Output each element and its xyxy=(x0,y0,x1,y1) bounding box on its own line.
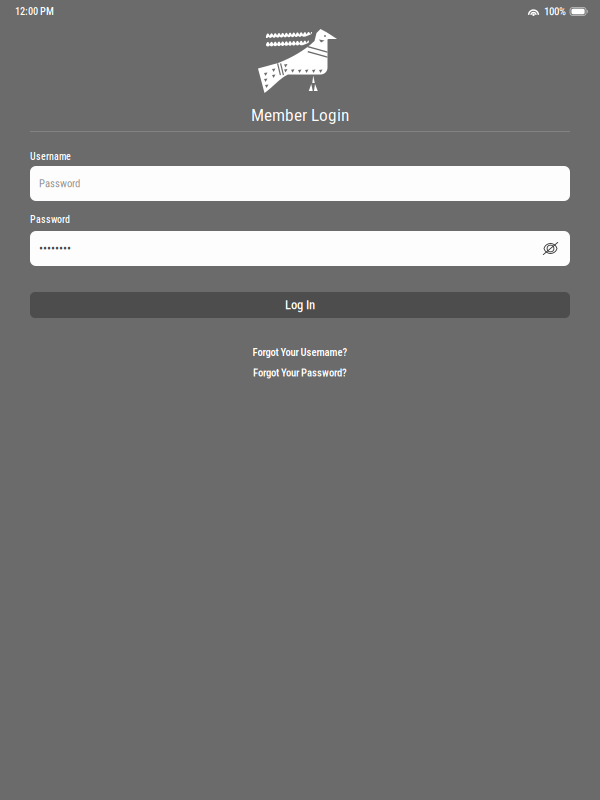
button[interactable]: Forgot Your Password? xyxy=(245,363,355,382)
button[interactable]: Log In xyxy=(30,292,570,318)
staticText: Forgot Your Password? xyxy=(253,366,347,379)
staticText: Log In xyxy=(285,298,315,312)
staticText: 12:00 PM xyxy=(15,5,54,18)
button[interactable]: Forgot Your Username? xyxy=(244,343,355,361)
staticText: Username xyxy=(30,151,71,162)
staticText: 100% xyxy=(544,5,566,18)
staticText: Forgot Your Username? xyxy=(252,346,347,358)
staticText: Member Login xyxy=(251,105,349,125)
staticText: •••••••• xyxy=(39,241,71,256)
staticText: Password xyxy=(30,214,70,225)
button[interactable]: •••••••• xyxy=(30,231,570,266)
button[interactable]: Password xyxy=(30,166,570,201)
staticText: Password xyxy=(39,177,80,190)
